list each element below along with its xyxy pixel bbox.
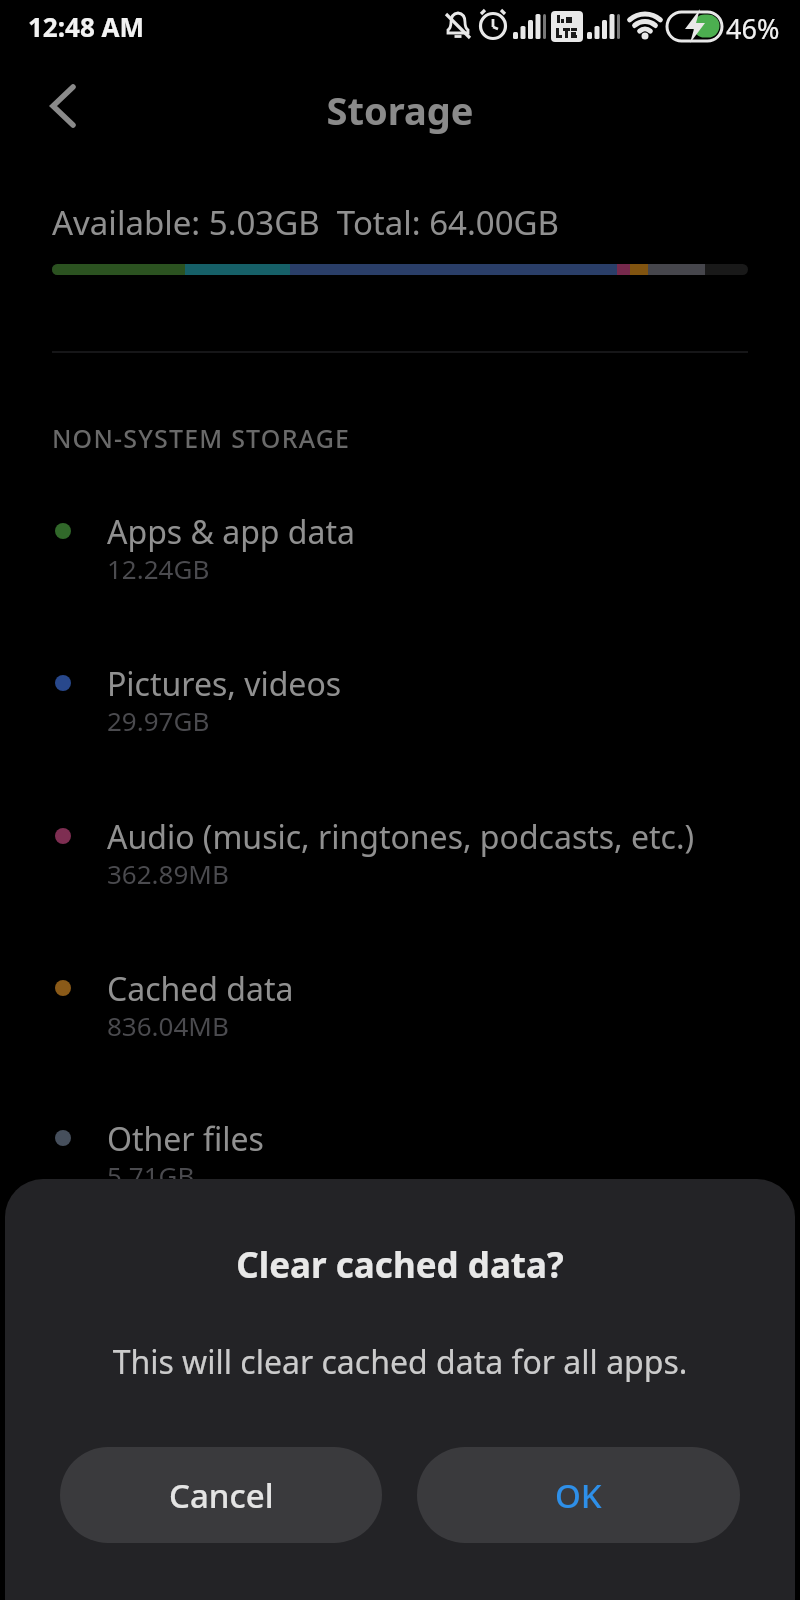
staticText: OK <box>555 1473 602 1518</box>
staticText: 5.71GB <box>107 1158 195 1193</box>
staticText: Clear cached data? <box>5 1241 795 1289</box>
button[interactable]: Audio (music, ringtones, podcasts, etc.) <box>0 815 800 925</box>
button[interactable]: Other files <box>0 1117 800 1227</box>
staticText: Storage <box>0 84 800 136</box>
staticText: Pictures, videos <box>107 662 342 706</box>
button[interactable] <box>36 78 92 134</box>
staticText: 46% <box>726 10 780 47</box>
staticText: Apps & app data <box>107 510 355 554</box>
staticText: NON-SYSTEM STORAGE <box>52 421 351 455</box>
staticText: 29.97GB <box>107 703 210 738</box>
staticText: Audio (music, ringtones, podcasts, etc.) <box>107 815 695 859</box>
button[interactable]: Cached data <box>0 967 800 1077</box>
staticText: 12:48 AM <box>28 9 145 44</box>
button[interactable]: Apps & app data <box>0 510 800 620</box>
staticText: 12.24GB <box>107 551 210 586</box>
staticText: Cancel <box>169 1473 274 1518</box>
staticText: Other files <box>107 1117 264 1161</box>
staticText: 836.04MB <box>107 1008 229 1043</box>
staticText: Available: 5.03GB Total: 64.00GB <box>52 200 560 245</box>
button[interactable]: Cancel <box>60 1447 382 1543</box>
staticText: Cached data <box>107 967 294 1011</box>
button[interactable]: Pictures, videos <box>0 662 800 772</box>
staticText: This will clear cached data for all apps… <box>5 1340 795 1384</box>
staticText: 362.89MB <box>107 856 229 891</box>
button[interactable]: OK <box>417 1447 740 1543</box>
